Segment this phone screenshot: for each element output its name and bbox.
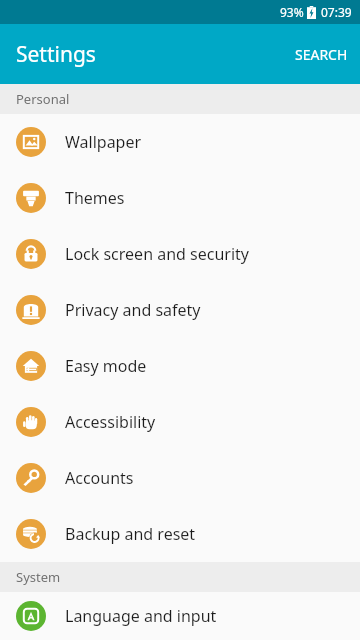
staticText: System: [16, 568, 61, 586]
button[interactable]: Lock screen and security: [0, 226, 360, 282]
staticText: Easy mode: [65, 355, 147, 377]
button[interactable]: Language and input: [0, 592, 360, 640]
button[interactable]: Backup and reset: [0, 506, 360, 562]
button[interactable]: Themes: [0, 170, 360, 226]
button[interactable]: Privacy and safety: [0, 282, 360, 338]
button[interactable]: Accessibility: [0, 394, 360, 450]
staticText: 07:39: [321, 4, 352, 20]
button[interactable]: Easy mode: [0, 338, 360, 394]
staticText: Wallpaper: [65, 131, 142, 153]
staticText: Lock screen and security: [65, 243, 249, 265]
staticText: SEARCH: [295, 45, 348, 64]
staticText: Language and input: [65, 605, 217, 627]
button[interactable]: Accounts: [0, 450, 360, 506]
button[interactable]: Wallpaper: [0, 114, 360, 170]
staticText: Personal: [16, 90, 70, 108]
staticText: Accessibility: [65, 411, 156, 433]
button[interactable]: SEARCH: [283, 31, 360, 78]
staticText: Accounts: [65, 467, 134, 489]
staticText: 93%: [280, 4, 304, 20]
staticText: Privacy and safety: [65, 299, 201, 321]
staticText: Themes: [65, 187, 125, 209]
staticText: Settings: [16, 40, 96, 69]
staticText: Backup and reset: [65, 523, 196, 545]
